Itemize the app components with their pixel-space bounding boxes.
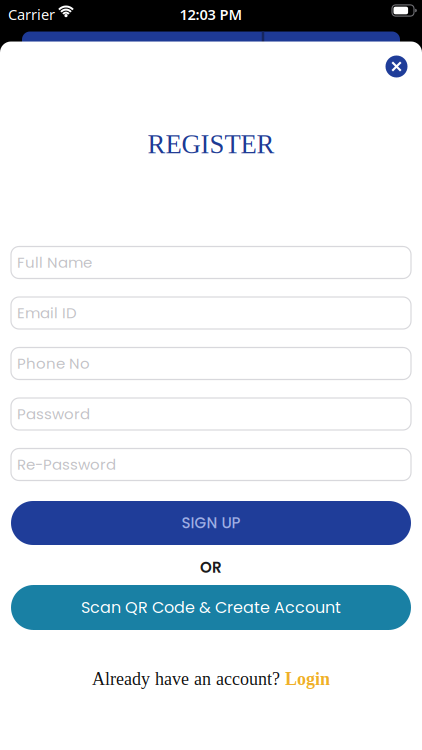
button[interactable]: SIGN UP <box>11 501 411 545</box>
button[interactable]: Scan QR Code & Create Account <box>11 585 411 630</box>
staticText: Re-Password <box>17 454 116 475</box>
staticText: SIGN UP <box>181 512 240 533</box>
staticText: Phone No <box>17 353 90 374</box>
staticText: Login <box>285 669 330 689</box>
staticText: Carrier <box>8 4 55 24</box>
button[interactable]: Login <box>285 669 330 689</box>
staticText: REGISTER <box>147 129 274 159</box>
staticText: 12:03 PM <box>179 4 242 24</box>
staticText: Already have an account? <box>92 669 280 689</box>
staticText: OR <box>200 557 222 578</box>
staticText: Full Name <box>17 252 92 273</box>
button[interactable]: Close <box>385 55 407 77</box>
staticText: Email ID <box>17 302 77 323</box>
staticText: Scan QR Code & Create Account <box>81 596 341 619</box>
staticText: Password <box>17 403 90 424</box>
